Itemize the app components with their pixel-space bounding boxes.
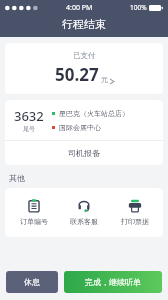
button[interactable]: 打印票据: [113, 197, 157, 228]
staticText: 星巴克（火车站总店）: [59, 109, 129, 118]
staticText: 行程结束: [0, 17, 168, 31]
staticText: 元: [101, 75, 108, 84]
staticText: 100%: [130, 3, 147, 12]
staticText: 联系客服: [70, 217, 98, 226]
staticText: 国际会展中心: [59, 123, 101, 132]
staticText: 其他: [9, 173, 25, 183]
other: 联系客服: [77, 199, 91, 213]
button[interactable]: 已支付: [5, 43, 163, 94]
staticText: 50.27: [55, 63, 99, 86]
button[interactable]: 休息: [6, 271, 58, 293]
staticText: 司机报备: [68, 148, 100, 158]
staticText: 订单编号: [20, 217, 48, 226]
staticText: 休息: [24, 277, 40, 287]
staticText: 3632: [14, 107, 44, 125]
button[interactable]: 司机报备: [5, 141, 163, 165]
staticText: 4:00 PM: [66, 3, 93, 13]
other: 订单编号: [27, 199, 41, 213]
staticText: 已支付: [73, 51, 96, 60]
button[interactable]: 完成，继续听单: [64, 271, 162, 293]
button[interactable]: 订单编号: [12, 197, 56, 228]
staticText: 尾号: [23, 125, 35, 133]
other: 打印票据: [128, 199, 142, 213]
button[interactable]: 联系客服: [62, 197, 106, 228]
staticText: 完成，继续听单: [85, 277, 141, 287]
staticText: 打印票据: [121, 217, 149, 226]
